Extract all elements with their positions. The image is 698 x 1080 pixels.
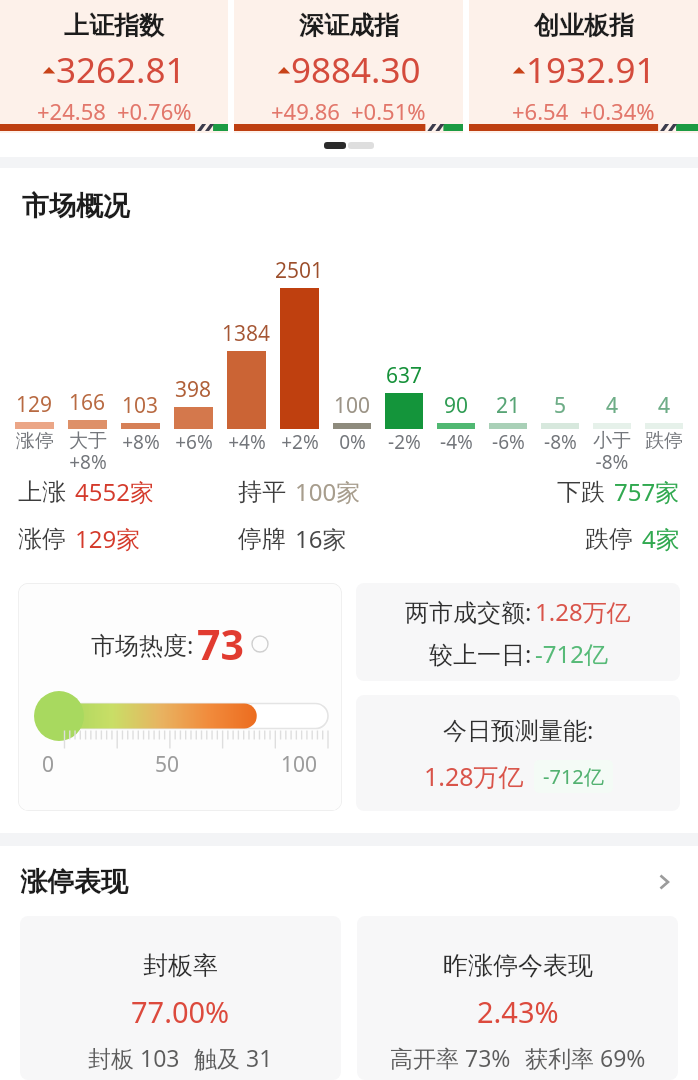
staticText: 两市成交额: bbox=[405, 595, 532, 628]
staticText: 持平 bbox=[238, 477, 286, 507]
staticText: 1.28万亿 bbox=[424, 759, 524, 793]
staticText: +49.86 bbox=[271, 96, 340, 126]
staticText: -8% bbox=[544, 429, 577, 455]
staticText: 下跌 bbox=[557, 477, 605, 507]
button[interactable]: 涨停表现 bbox=[20, 865, 678, 899]
staticText: -6% bbox=[492, 429, 525, 455]
button[interactable]: 今日预测量能: bbox=[356, 695, 680, 811]
button[interactable]: 创业板指 bbox=[469, 0, 698, 133]
staticText: 0 bbox=[42, 750, 55, 779]
button[interactable]: 市场热度: bbox=[18, 583, 342, 811]
button[interactable]: 上证指数 bbox=[0, 0, 228, 133]
staticText: +0.51% bbox=[351, 96, 426, 126]
staticText: +0.34% bbox=[580, 96, 655, 126]
other: 说明 bbox=[251, 635, 269, 653]
staticText: 获利率 69% bbox=[525, 1042, 646, 1073]
staticText: 1932.91 bbox=[526, 46, 656, 94]
staticText: 100家 bbox=[295, 475, 361, 508]
staticText: 1384 bbox=[222, 319, 271, 348]
staticText: 4 bbox=[606, 391, 619, 420]
staticText: 0% bbox=[339, 429, 366, 455]
button[interactable]: 昨涨停今表现 bbox=[357, 916, 678, 1080]
staticText: +6% bbox=[175, 429, 213, 455]
staticText: 2501 bbox=[275, 256, 324, 285]
staticText: 100 bbox=[281, 750, 318, 779]
staticText: 封板率 bbox=[143, 950, 218, 981]
button[interactable]: 深证成指 bbox=[234, 0, 463, 133]
staticText: 涨停 bbox=[16, 429, 54, 453]
staticText: 昨涨停今表现 bbox=[443, 950, 593, 981]
staticText: 129家 bbox=[75, 522, 141, 555]
staticText: 4552家 bbox=[75, 475, 154, 508]
staticText: 涨停 bbox=[18, 524, 66, 554]
staticText: 398 bbox=[175, 375, 212, 404]
staticText: 跌停 bbox=[585, 524, 633, 554]
staticText: -712亿 bbox=[543, 763, 604, 790]
staticText: 深证成指 bbox=[299, 10, 399, 41]
staticText: 市场概况 bbox=[22, 189, 130, 223]
staticText: 小于 -8% bbox=[593, 429, 631, 475]
staticText: -712亿 bbox=[535, 637, 608, 670]
staticText: 1.28万亿 bbox=[535, 595, 631, 628]
staticText: 上证指数 bbox=[64, 10, 164, 41]
staticText: 4家 bbox=[642, 522, 680, 555]
staticText: 5 bbox=[554, 391, 567, 420]
staticText: 3262.81 bbox=[56, 46, 186, 94]
staticText: 2.43% bbox=[477, 992, 559, 1031]
staticText: +24.58 bbox=[37, 96, 106, 126]
staticText: 创业板指 bbox=[534, 10, 634, 41]
staticText: +4% bbox=[228, 429, 266, 455]
staticText: 触及 31 bbox=[194, 1042, 273, 1073]
staticText: +2% bbox=[281, 429, 319, 455]
staticText: 100 bbox=[334, 391, 371, 420]
staticText: 73 bbox=[197, 616, 244, 672]
staticText: 今日预测量能: bbox=[443, 713, 594, 746]
staticText: 166 bbox=[69, 388, 106, 417]
staticText: 103 bbox=[122, 391, 159, 420]
staticText: +6.54 bbox=[512, 96, 569, 126]
staticText: 封板 103 bbox=[88, 1042, 180, 1073]
staticText: 涨停表现 bbox=[20, 865, 128, 899]
staticText: 129 bbox=[16, 390, 53, 419]
staticText: 高开率 73% bbox=[390, 1042, 511, 1073]
staticText: 停牌 bbox=[238, 524, 286, 554]
staticText: 757家 bbox=[614, 475, 680, 508]
staticText: 637 bbox=[386, 361, 423, 390]
button[interactable]: 两市成交额: bbox=[356, 583, 680, 681]
staticText: 16家 bbox=[295, 522, 347, 555]
staticText: +0.76% bbox=[117, 96, 192, 126]
staticText: 21 bbox=[496, 391, 521, 420]
staticText: +8% bbox=[122, 429, 160, 455]
staticText: 大于 +8% bbox=[69, 429, 107, 475]
staticText: -4% bbox=[440, 429, 473, 455]
staticText: 50 bbox=[155, 750, 180, 779]
staticText: 4 bbox=[658, 391, 671, 420]
staticText: 上涨 bbox=[18, 477, 66, 507]
other: 查看更多 bbox=[650, 868, 678, 896]
staticText: 跌停 bbox=[645, 429, 683, 453]
staticText: -2% bbox=[388, 429, 421, 455]
staticText: 较上一日: bbox=[429, 637, 532, 670]
staticText: 市场热度: bbox=[91, 628, 194, 661]
button[interactable]: 封板率 bbox=[20, 916, 341, 1080]
staticText: 9884.30 bbox=[291, 46, 421, 94]
staticText: 77.00% bbox=[131, 992, 230, 1031]
staticText: 90 bbox=[444, 391, 469, 420]
